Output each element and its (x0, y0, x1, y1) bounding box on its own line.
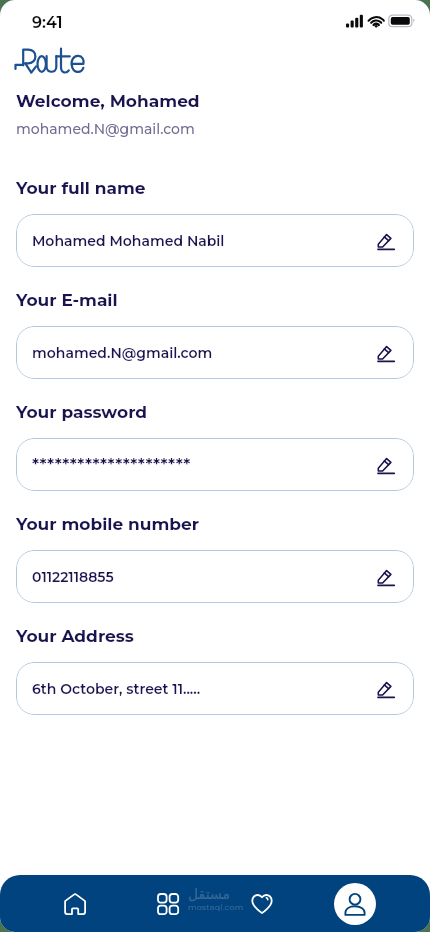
staticText: Your mobile number (16, 514, 200, 535)
staticText: Welcome, Mohamed (16, 91, 200, 112)
staticText: Your E-mail (16, 290, 118, 311)
staticText: mohamed.N@gmail.com (16, 120, 195, 137)
staticText: 6th October, street 11..... (32, 680, 201, 697)
button[interactable]: Home (47, 875, 103, 932)
button[interactable]: Mohamed Mohamed Nabil (16, 214, 414, 267)
staticText: Mohamed Mohamed Nabil (32, 232, 225, 249)
button[interactable]: Edit Your mobile number (362, 550, 414, 603)
button[interactable]: 01122118855 (16, 550, 414, 603)
staticText: 01122118855 (32, 568, 114, 585)
staticText: mostaql.com (188, 902, 244, 912)
button[interactable]: ********************* (16, 438, 414, 491)
staticText: مستقل (188, 886, 230, 902)
staticText: ********************* (32, 454, 191, 475)
button[interactable]: Edit Your Address (362, 662, 414, 715)
button[interactable]: Edit Your E-mail (362, 326, 414, 379)
staticText: mohamed.N@gmail.com (32, 344, 213, 361)
button[interactable]: Favourites (234, 875, 290, 932)
staticText: Your password (16, 402, 148, 423)
button[interactable]: mohamed.N@gmail.com (16, 326, 414, 379)
button[interactable]: Profile (327, 875, 383, 932)
button[interactable]: 6th October, street 11..... (16, 662, 414, 715)
staticText: Your Address (16, 626, 134, 647)
button[interactable]: Categories (140, 875, 196, 932)
staticText: 9:41 (32, 13, 63, 33)
button[interactable]: Edit Your full name (362, 214, 414, 267)
button[interactable]: Edit Your password (362, 438, 414, 491)
staticText: Your full name (16, 178, 146, 199)
